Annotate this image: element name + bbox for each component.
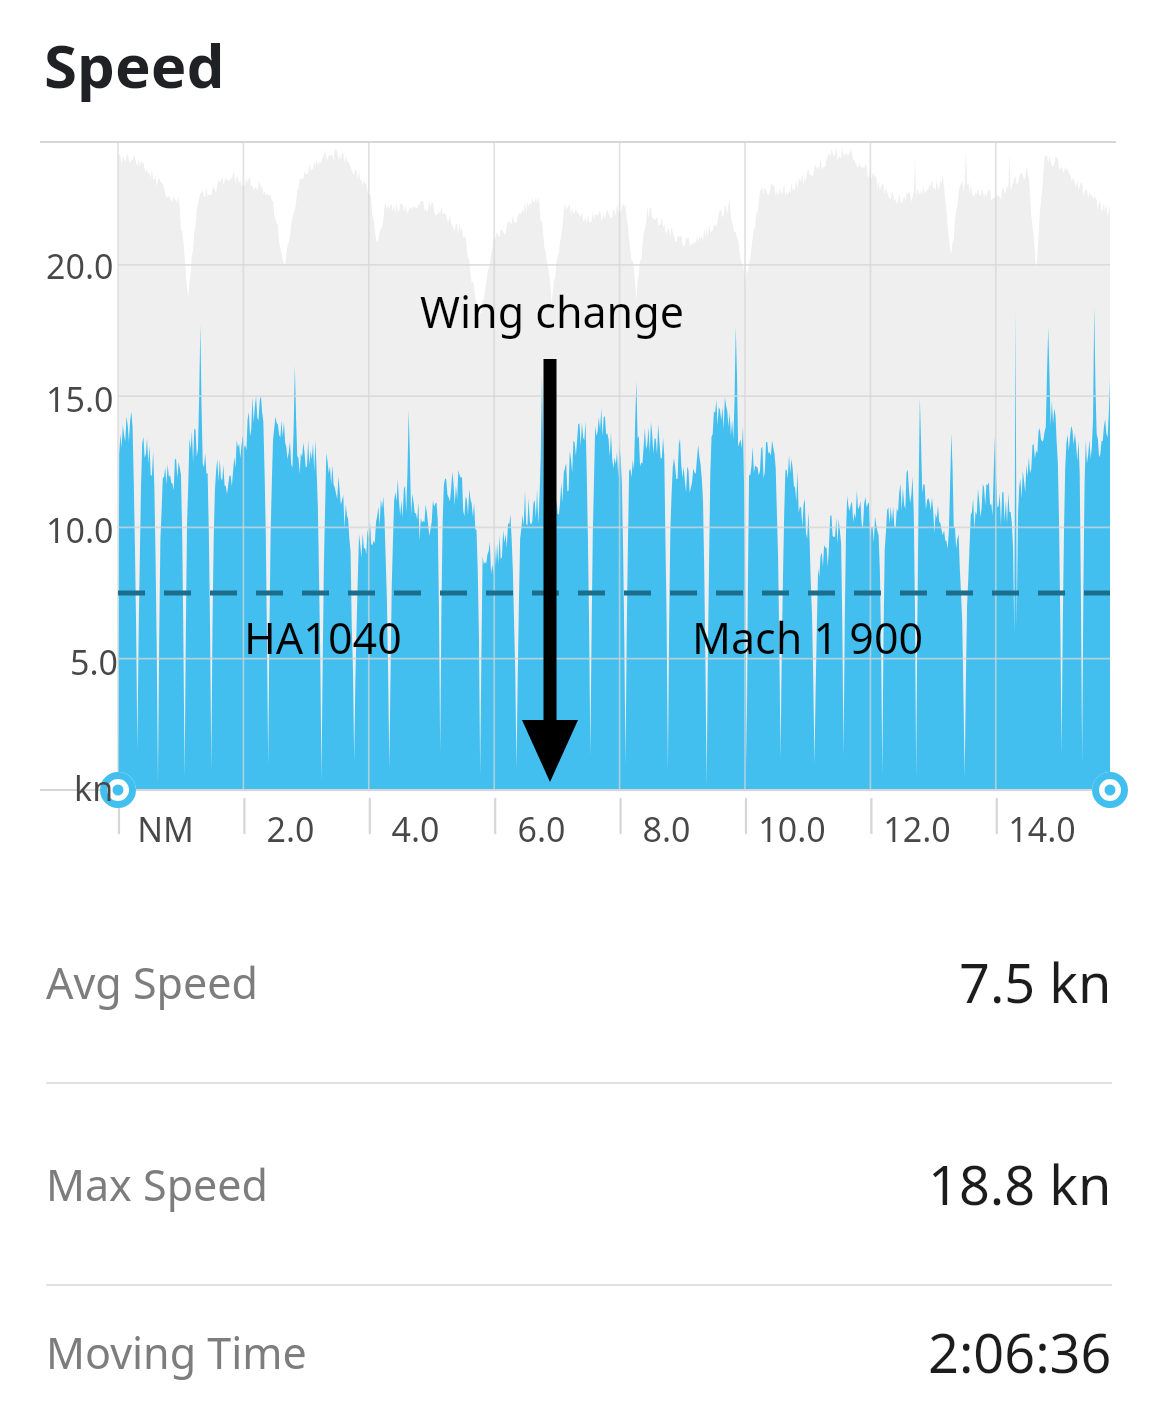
staticText: 20.0 xyxy=(46,243,114,289)
staticText: 8.0 xyxy=(642,806,691,852)
staticText: 18.8 kn xyxy=(928,1147,1112,1221)
staticText: 4.0 xyxy=(391,806,440,852)
staticText: 14.0 xyxy=(1008,806,1076,852)
button[interactable]: Moving Time xyxy=(0,1286,1158,1418)
staticText: 10.0 xyxy=(758,806,826,852)
staticText: 15.0 xyxy=(46,376,114,422)
staticText: 12.0 xyxy=(883,806,951,852)
staticText: 7.5 kn xyxy=(959,945,1112,1019)
staticText: Moving Time xyxy=(46,1323,307,1382)
staticText: HA1040 xyxy=(244,608,402,667)
staticText: 5.0 xyxy=(70,639,119,685)
staticText: 2:06:36 xyxy=(928,1315,1112,1389)
button[interactable]: Max Speed xyxy=(0,1084,1158,1284)
staticText: 10.0 xyxy=(46,507,114,553)
staticText: Wing change xyxy=(420,282,684,341)
staticText: Avg Speed xyxy=(46,953,258,1012)
staticText: 2.0 xyxy=(266,806,315,852)
staticText: NM xyxy=(137,806,194,852)
staticText: Mach 1 900 xyxy=(692,608,924,667)
staticText: Speed xyxy=(44,24,225,106)
staticText: kn xyxy=(74,765,114,811)
staticText: 6.0 xyxy=(517,806,566,852)
button[interactable]: Avg Speed xyxy=(0,882,1158,1082)
staticText: Max Speed xyxy=(46,1155,269,1214)
